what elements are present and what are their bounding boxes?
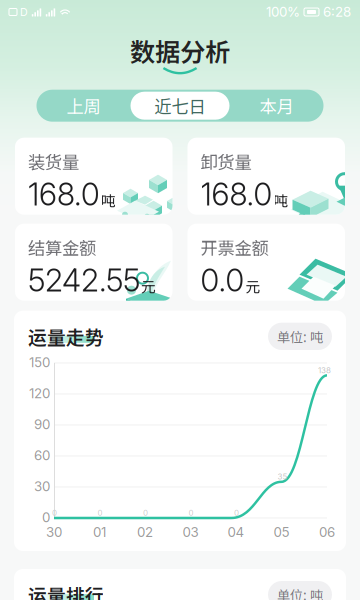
staticText: 02 xyxy=(137,524,153,540)
button[interactable]: 结算金额 xyxy=(15,224,172,301)
staticText: 0 xyxy=(52,508,57,518)
staticText: 120 xyxy=(29,385,50,401)
staticText: 90 xyxy=(34,416,50,432)
staticText: 168.0 xyxy=(28,176,100,213)
button[interactable]: 卸货量 xyxy=(187,138,345,215)
staticText: 结算金额 xyxy=(28,235,96,260)
staticText: 30 xyxy=(34,478,50,494)
staticText: 04 xyxy=(227,524,244,540)
button[interactable]: 上周 xyxy=(36,90,130,122)
staticText: 运量走势 xyxy=(28,323,104,350)
staticText: 03 xyxy=(182,524,198,540)
staticText: 吨 xyxy=(273,189,288,210)
staticText: 05 xyxy=(273,524,289,540)
staticText: 01 xyxy=(93,524,106,540)
staticText: 06 xyxy=(319,524,335,540)
staticText: 35 xyxy=(277,472,287,481)
button[interactable]: 本月 xyxy=(229,90,323,122)
staticText: D xyxy=(20,5,28,18)
staticText: 30 xyxy=(46,524,62,540)
staticText: 单位: 吨 xyxy=(277,327,323,346)
staticText: 卸货量 xyxy=(200,149,251,174)
staticText: 168.0 xyxy=(200,176,272,213)
staticText: 0 xyxy=(234,508,239,518)
staticText: 0 xyxy=(188,508,193,518)
staticText: 138 xyxy=(318,365,331,375)
staticText: 6:28 xyxy=(323,4,351,20)
staticText: 150 xyxy=(29,354,50,370)
staticText: 0 xyxy=(42,509,50,525)
staticText: 本月 xyxy=(259,93,293,118)
button[interactable]: 单位: 吨 xyxy=(268,581,332,600)
staticText: 元 xyxy=(245,275,260,296)
button[interactable]: 近七日 xyxy=(130,92,229,120)
staticText: 0 xyxy=(143,508,148,518)
button[interactable]: 装货量 xyxy=(15,138,172,215)
staticText: 数据分析 xyxy=(130,32,230,69)
button[interactable]: 单位: 吨 xyxy=(268,323,332,350)
staticText: 5242.55 xyxy=(28,262,140,299)
staticText: 吨 xyxy=(101,189,116,210)
staticText: 单位: 吨 xyxy=(277,585,323,600)
staticText: 100% xyxy=(266,4,300,20)
button[interactable]: 开票金额 xyxy=(187,224,345,301)
staticText: 开票金额 xyxy=(200,235,268,260)
staticText: 0.0 xyxy=(200,262,244,299)
staticText: 元 xyxy=(141,275,156,296)
staticText: 上周 xyxy=(66,93,100,118)
staticText: 装货量 xyxy=(28,149,79,174)
staticText: 0 xyxy=(97,508,102,518)
staticText: 近七日 xyxy=(154,93,205,118)
staticText: 运量排行 xyxy=(28,581,104,600)
staticText: 60 xyxy=(34,447,50,463)
